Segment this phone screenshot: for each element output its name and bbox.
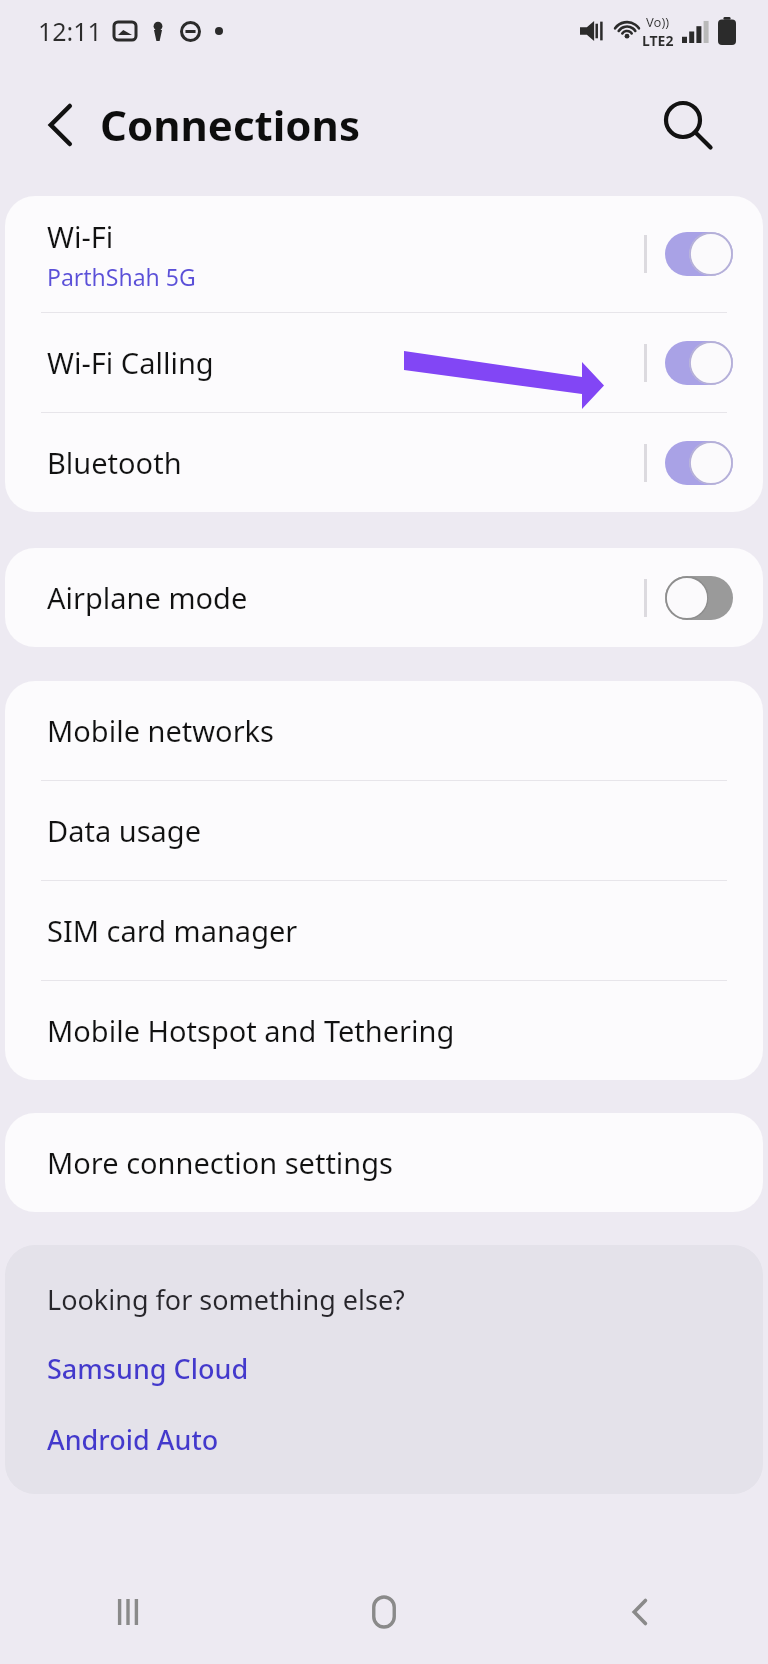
button[interactable]: Toggle on xyxy=(665,341,733,385)
staticText: Mobile networks xyxy=(47,711,274,750)
staticText: SIM card manager xyxy=(47,911,298,950)
staticText: ParthShah 5G xyxy=(47,261,196,292)
button[interactable]: Samsung Cloud xyxy=(5,1346,763,1391)
button[interactable]: Bluetooth xyxy=(5,413,763,512)
staticText: Connections xyxy=(100,96,360,153)
staticText: Wi-Fi Calling xyxy=(47,343,214,382)
button[interactable]: Data usage xyxy=(5,781,763,880)
button[interactable]: Recents xyxy=(88,1572,168,1652)
staticText: Android Auto xyxy=(47,1421,219,1458)
button[interactable]: Search xyxy=(662,100,712,150)
button[interactable]: SIM card manager xyxy=(5,881,763,980)
button[interactable]: Wi-Fi Calling xyxy=(5,313,763,412)
button[interactable]: More connection settings xyxy=(5,1113,763,1212)
button[interactable]: Airplane mode xyxy=(5,548,763,647)
staticText: Mobile Hotspot and Tethering xyxy=(47,1011,455,1050)
staticText: More connection settings xyxy=(47,1143,393,1182)
staticText: Bluetooth xyxy=(47,443,182,482)
button[interactable]: Toggle on xyxy=(665,441,733,485)
staticText: Samsung Cloud xyxy=(47,1350,249,1387)
button[interactable]: Wi-Fi xyxy=(5,196,763,312)
button[interactable]: Mobile networks xyxy=(5,681,763,780)
staticText: Airplane mode xyxy=(47,578,248,617)
button[interactable]: Home xyxy=(344,1572,424,1652)
button[interactable]: Back xyxy=(30,97,86,153)
button[interactable]: Mobile Hotspot and Tethering xyxy=(5,981,763,1080)
staticText: LTE2 xyxy=(642,31,674,50)
button[interactable]: Toggle on xyxy=(665,232,733,276)
button[interactable]: Toggle off xyxy=(665,576,733,620)
staticText: Vo)) xyxy=(646,13,670,31)
staticText: Wi-Fi xyxy=(47,217,114,256)
button[interactable]: Android Auto xyxy=(5,1417,763,1462)
staticText: 12:11 xyxy=(38,14,102,48)
staticText: Data usage xyxy=(47,811,201,850)
button[interactable]: Back xyxy=(600,1572,680,1652)
staticText: Looking for something else? xyxy=(47,1281,405,1318)
